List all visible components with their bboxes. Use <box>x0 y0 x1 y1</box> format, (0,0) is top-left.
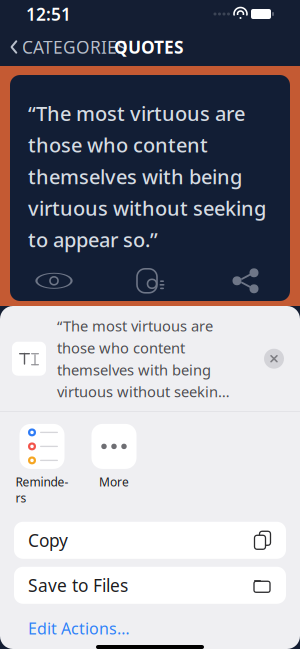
staticText: Edit Actions… <box>28 618 130 639</box>
button[interactable]: Reminders <box>14 424 70 506</box>
button[interactable]: Close <box>260 345 288 373</box>
button[interactable]: Copy <box>14 522 286 559</box>
staticText: Save to Files <box>28 574 128 597</box>
staticText: More <box>99 474 129 490</box>
button[interactable]: QUOTES <box>104 27 194 66</box>
button[interactable]: Edit Actions… <box>14 612 144 645</box>
button[interactable]: Speak <box>112 261 188 301</box>
button[interactable]: More <box>86 424 142 490</box>
staticText: “The most virtuous are those who content… <box>28 100 266 253</box>
staticText: Copy <box>28 529 68 552</box>
staticText: Reminders <box>15 474 68 506</box>
button[interactable]: Save to Files <box>14 567 286 604</box>
staticText: “The most virtuous are those who content… <box>57 316 230 401</box>
button[interactable]: View <box>16 261 92 301</box>
staticText: QUOTES <box>114 35 184 58</box>
button[interactable]: CATEGORIES <box>0 27 137 66</box>
staticText: 12:51 <box>26 2 71 25</box>
staticText: CATEGORIES <box>22 35 127 58</box>
button[interactable]: Share <box>208 261 284 301</box>
